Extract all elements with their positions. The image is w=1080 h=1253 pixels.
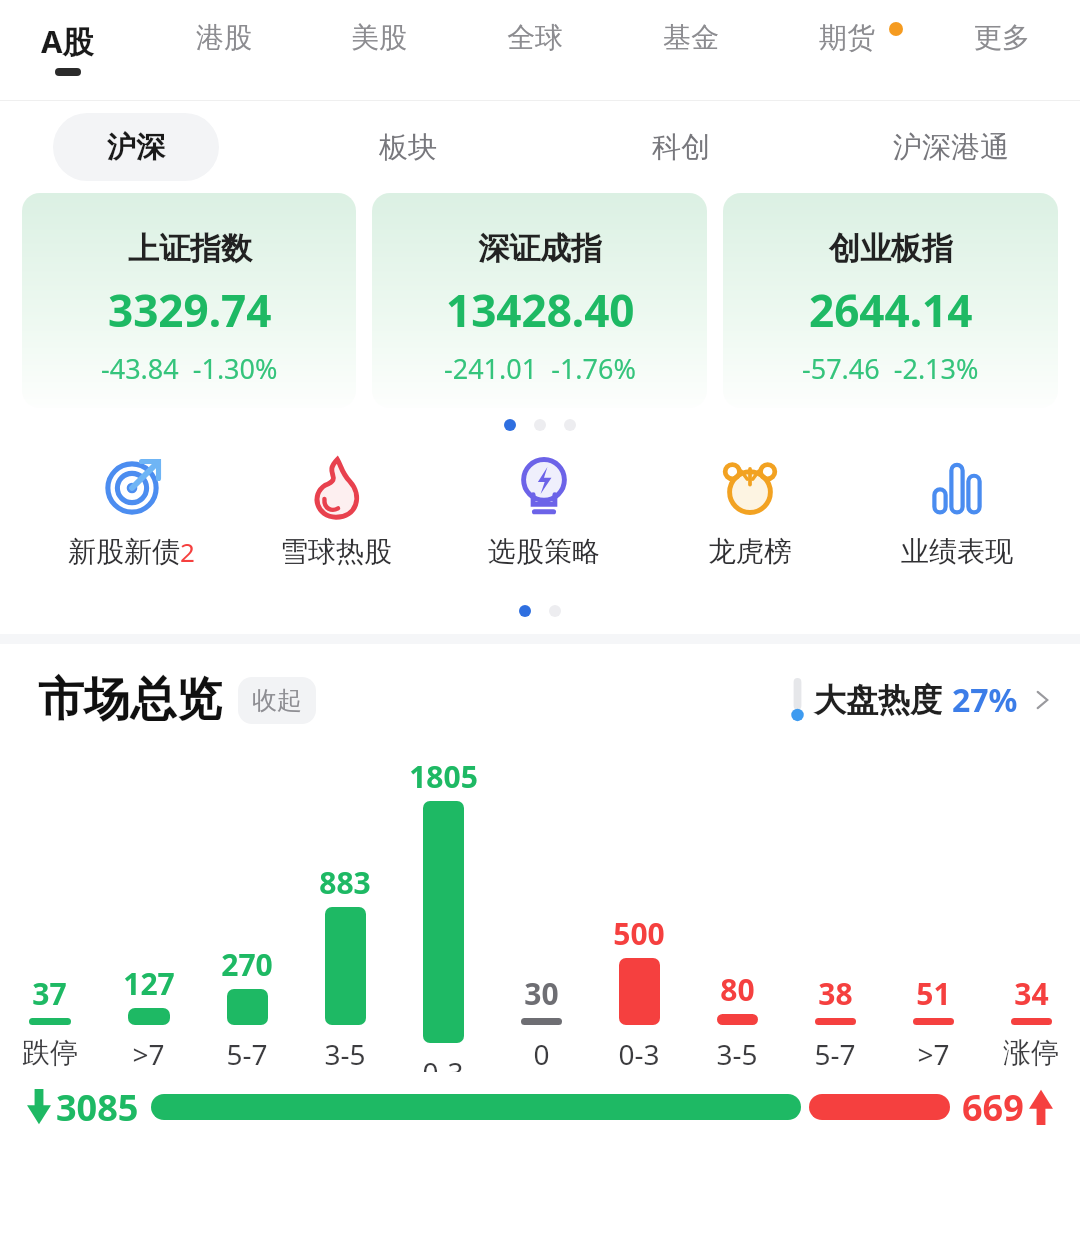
button[interactable]: 选股策略	[444, 442, 644, 594]
staticText: 3-5	[324, 1035, 366, 1072]
staticText: 37	[32, 973, 67, 1014]
button[interactable]: 新股新债	[31, 442, 231, 594]
staticText: 5-7	[814, 1035, 856, 1072]
staticText: 1805	[409, 756, 478, 797]
staticText: 全球	[507, 20, 563, 55]
staticText: 科创	[652, 129, 710, 166]
staticText: 收起	[252, 685, 302, 716]
button[interactable]: 业绩表现	[857, 442, 1057, 594]
staticText: 27%	[952, 678, 1018, 722]
staticText: 127	[123, 963, 175, 1004]
button[interactable]: 板块	[325, 113, 491, 181]
staticText: 深证成指	[478, 229, 602, 268]
staticText: 2	[180, 534, 195, 569]
button[interactable]: 科创	[598, 113, 764, 181]
staticText: -43.84 -1.30%	[101, 350, 278, 387]
staticText: 港股	[196, 20, 252, 55]
staticText: 5-7	[226, 1035, 268, 1072]
staticText: 沪深	[107, 129, 165, 166]
button[interactable]: 沪深	[53, 113, 219, 181]
staticText: -241.01 -1.76%	[444, 350, 636, 387]
button[interactable]: A股	[5, 0, 129, 100]
button[interactable]: 港股	[162, 0, 286, 100]
button[interactable]: 基金	[629, 0, 753, 100]
staticText: 3329.74	[108, 280, 272, 340]
button[interactable]: 期货	[785, 0, 909, 100]
button[interactable]: 上证指数	[22, 193, 356, 408]
staticText: >7	[917, 1035, 950, 1072]
staticText: 2644.14	[809, 280, 973, 340]
staticText: 基金	[663, 20, 719, 55]
staticText: 270	[221, 944, 273, 985]
staticText: 创业板指	[829, 229, 953, 268]
staticText: 大盘热度	[814, 680, 942, 720]
button[interactable]: 深证成指	[372, 193, 707, 408]
staticText: 沪深港通	[893, 129, 1009, 166]
staticText: A股	[41, 20, 94, 62]
button[interactable]: 龙虎榜	[650, 442, 850, 594]
staticText: 龙虎榜	[708, 534, 792, 569]
staticText: -57.46 -2.13%	[802, 350, 979, 387]
staticText: 新股新债	[68, 534, 180, 569]
staticText: 0-3	[618, 1035, 660, 1072]
button[interactable]: 大盘热度	[791, 678, 1054, 722]
staticText: 669	[962, 1083, 1024, 1132]
staticText: 期货	[819, 20, 875, 55]
staticText: 0-3	[422, 1053, 464, 1072]
staticText: 跌停	[22, 1035, 78, 1070]
staticText: 51	[916, 973, 951, 1014]
button[interactable]: 更多	[940, 0, 1064, 100]
button[interactable]: 沪深港通	[851, 113, 1051, 181]
staticText: 更多	[974, 20, 1030, 55]
staticText: 883	[319, 862, 371, 903]
button[interactable]: 雪球热股	[236, 442, 436, 594]
staticText: >7	[132, 1035, 165, 1072]
staticText: 0	[533, 1035, 550, 1072]
staticText: 市场总览	[38, 671, 222, 729]
staticText: 选股策略	[488, 534, 600, 569]
staticText: 34	[1014, 973, 1049, 1014]
staticText: 80	[720, 969, 755, 1010]
staticText: 上证指数	[128, 229, 252, 268]
staticText: 13428.40	[446, 280, 635, 340]
staticText: 美股	[351, 20, 407, 55]
button[interactable]: 全球	[473, 0, 597, 100]
staticText: 3085	[56, 1083, 139, 1132]
button[interactable]: 创业板指	[723, 193, 1058, 408]
staticText: 30	[524, 973, 559, 1014]
staticText: 38	[818, 973, 853, 1014]
button[interactable]: 市场总览	[38, 671, 316, 729]
staticText: 3-5	[716, 1035, 758, 1072]
staticText: 500	[613, 913, 665, 954]
staticText: 业绩表现	[901, 534, 1013, 569]
staticText: 雪球热股	[280, 534, 392, 569]
staticText: 板块	[379, 129, 437, 166]
button[interactable]: 美股	[317, 0, 441, 100]
staticText: 涨停	[1003, 1035, 1059, 1070]
